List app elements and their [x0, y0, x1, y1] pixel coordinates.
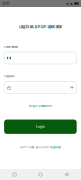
staticText: Don't have account? [20, 146, 50, 149]
staticText: Forgot password? [29, 104, 52, 108]
staticText: SignUp [50, 146, 61, 149]
button[interactable]: Home [31, 169, 49, 180]
button[interactable]: Back [57, 169, 75, 180]
button[interactable]: SignUp [50, 146, 61, 149]
staticText: Password [4, 75, 14, 78]
staticText: Login as a POP operator [18, 24, 62, 29]
button[interactable]: Forgot password? [0, 104, 81, 108]
button[interactable]: Login [4, 119, 77, 134]
staticText: Phone number [4, 46, 18, 48]
staticText: Login [36, 125, 45, 128]
staticText: 9:41 [2, 1, 8, 6]
button[interactable]: Recent apps [5, 169, 23, 180]
